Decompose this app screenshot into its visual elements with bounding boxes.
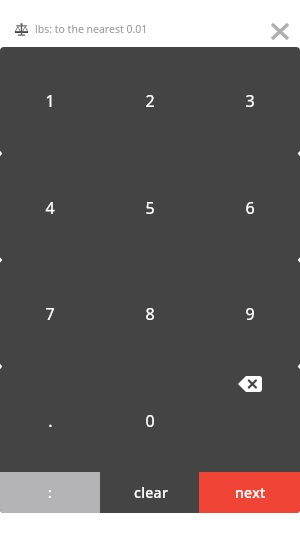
staticText: 4 <box>45 197 55 219</box>
staticText: 5 <box>145 197 155 219</box>
button[interactable]: : <box>0 472 100 513</box>
button[interactable]: 9 <box>200 261 300 367</box>
staticText: 0 <box>145 410 155 432</box>
button[interactable]: 0 <box>100 368 200 474</box>
button[interactable]: 1 <box>0 48 100 154</box>
button[interactable]: Backspace <box>200 368 300 474</box>
staticText: . <box>48 410 53 432</box>
button[interactable]: 4 <box>0 155 100 261</box>
staticText: 7 <box>45 303 55 325</box>
staticText: 8 <box>145 303 155 325</box>
staticText: 6 <box>245 197 255 219</box>
button[interactable]: . <box>0 368 100 474</box>
staticText: : <box>48 483 53 502</box>
staticText: lbs: to the nearest 0.01 <box>35 22 148 36</box>
button[interactable]: 7 <box>0 261 100 367</box>
button[interactable]: 5 <box>100 155 200 261</box>
staticText: 1 <box>45 90 55 112</box>
button[interactable]: 3 <box>200 48 300 154</box>
staticText: next <box>235 483 266 502</box>
button[interactable]: Close <box>263 16 297 47</box>
staticText: 3 <box>245 90 255 112</box>
button[interactable]: 8 <box>100 261 200 367</box>
staticText: 9 <box>245 303 255 325</box>
button[interactable]: 6 <box>200 155 300 261</box>
button[interactable]: 2 <box>100 48 200 154</box>
staticText: 2 <box>145 90 155 112</box>
button[interactable]: clear <box>100 472 199 513</box>
staticText: clear <box>134 483 169 502</box>
button[interactable]: next <box>199 472 300 513</box>
